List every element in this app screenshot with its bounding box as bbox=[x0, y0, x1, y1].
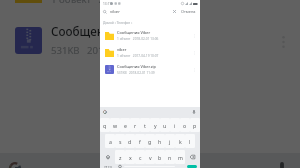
staticText: n bbox=[168, 154, 172, 161]
button[interactable]: y bbox=[150, 118, 160, 132]
staticText: g bbox=[148, 138, 152, 145]
button[interactable]: k bbox=[175, 134, 185, 148]
staticText: Домой › Телефон › bbox=[103, 20, 133, 24]
staticText: 1 объект 2017-04-19 10:07 bbox=[51, 0, 177, 6]
button[interactable]: Сообщения Viber bbox=[100, 27, 200, 44]
staticText: x bbox=[129, 154, 132, 161]
staticText: Сообщения Viber.zip bbox=[117, 64, 156, 69]
staticText: 1 объект 2017-04-19 10:07 bbox=[117, 54, 159, 58]
button[interactable]: v bbox=[145, 150, 155, 164]
button[interactable]: Voice input bbox=[273, 159, 291, 168]
staticText: m bbox=[178, 154, 183, 161]
button[interactable]: s bbox=[115, 134, 125, 148]
staticText: u bbox=[163, 122, 167, 129]
button[interactable]: u bbox=[160, 118, 170, 132]
staticText: 531KB 2018-02-01 11:39 bbox=[51, 45, 165, 57]
staticText: t bbox=[144, 122, 146, 129]
staticText: p bbox=[193, 122, 197, 129]
button[interactable]: f bbox=[135, 134, 145, 148]
staticText: h bbox=[158, 138, 162, 145]
staticText: w bbox=[113, 122, 118, 129]
button[interactable]: Enter bbox=[184, 165, 200, 168]
staticText: y bbox=[154, 122, 157, 129]
staticText: e bbox=[124, 122, 127, 129]
button[interactable]: h bbox=[155, 134, 165, 148]
staticText: c bbox=[139, 154, 142, 161]
staticText: l bbox=[189, 138, 191, 145]
button[interactable]: viber bbox=[100, 44, 200, 61]
staticText: d bbox=[128, 138, 132, 145]
staticText: i bbox=[174, 122, 176, 129]
button[interactable]: l bbox=[185, 134, 195, 148]
button[interactable]: m bbox=[175, 150, 185, 164]
button[interactable]: d bbox=[125, 134, 135, 148]
button[interactable]: n bbox=[165, 150, 175, 164]
staticText: 1 объект 2018-02-01 13:06 bbox=[117, 37, 159, 41]
button[interactable]: Отмена bbox=[179, 7, 198, 16]
staticText: k bbox=[179, 138, 182, 145]
button[interactable]: t bbox=[140, 118, 150, 132]
staticText: 531KB 2018-02-01 11:39 bbox=[117, 71, 155, 75]
staticText: f bbox=[139, 138, 141, 145]
staticText: a bbox=[109, 138, 112, 145]
button[interactable]: i bbox=[170, 118, 180, 132]
staticText: viber bbox=[117, 47, 127, 52]
button[interactable]: viber bbox=[0, 0, 300, 15]
button[interactable]: b bbox=[155, 150, 165, 164]
staticText: v bbox=[149, 154, 152, 161]
button[interactable]: Shift bbox=[100, 149, 115, 165]
button[interactable]: x bbox=[125, 150, 135, 164]
button[interactable]: z bbox=[115, 150, 125, 164]
staticText: z bbox=[119, 154, 122, 161]
staticText: Сообщения Viber bbox=[117, 30, 151, 35]
staticText: viber bbox=[110, 9, 120, 15]
button[interactable]: Voice input bbox=[191, 109, 197, 115]
staticText: ?123 bbox=[104, 165, 112, 168]
button[interactable]: Google search bbox=[102, 109, 108, 115]
staticText: Сообщения Viber.zip bbox=[51, 24, 168, 39]
button[interactable]: Сообщения Viber.zip bbox=[0, 15, 300, 66]
staticText: 13:11 bbox=[103, 2, 112, 6]
staticText: b bbox=[158, 154, 162, 161]
staticText: o bbox=[183, 122, 187, 129]
button[interactable]: Clear search bbox=[171, 8, 178, 15]
button[interactable]: a bbox=[105, 134, 115, 148]
staticText: s bbox=[119, 138, 122, 145]
button[interactable]: Backspace bbox=[185, 149, 200, 165]
button[interactable]: Сообщения Viber.zip bbox=[100, 61, 200, 78]
staticText: q bbox=[103, 122, 107, 129]
button[interactable]: Google search bbox=[6, 159, 24, 168]
button[interactable]: w bbox=[110, 118, 120, 132]
staticText: r bbox=[134, 122, 137, 129]
staticText: Отмена bbox=[181, 9, 196, 14]
other: Search bbox=[103, 10, 107, 14]
button[interactable]: j bbox=[165, 134, 175, 148]
button[interactable]: c bbox=[135, 150, 145, 164]
button[interactable]: ?123 bbox=[100, 165, 115, 168]
button[interactable]: q bbox=[100, 118, 110, 132]
button[interactable]: Emoji bbox=[115, 165, 124, 168]
button[interactable]: e bbox=[120, 118, 130, 132]
staticText: j bbox=[169, 138, 171, 145]
button[interactable]: g bbox=[145, 134, 155, 148]
button[interactable]: o bbox=[180, 118, 190, 132]
button[interactable]: p bbox=[190, 118, 200, 132]
button[interactable]: r bbox=[130, 118, 140, 132]
